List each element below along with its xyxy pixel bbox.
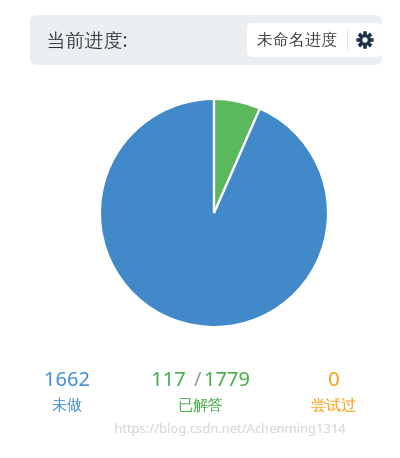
staticText: 未命名进度 bbox=[257, 30, 337, 50]
staticText: https://blog.csdn.net/Achenming1314 bbox=[114, 419, 346, 437]
staticText: 117 bbox=[151, 365, 186, 392]
staticText: 尝试过 bbox=[311, 396, 356, 415]
button[interactable]: 未命名进度 bbox=[247, 23, 347, 57]
staticText: 1662 bbox=[44, 365, 90, 392]
button[interactable]: 117 bbox=[134, 363, 267, 417]
staticText: / bbox=[186, 365, 204, 392]
button[interactable]: 1662 bbox=[0, 363, 134, 417]
staticText: 已解答 bbox=[178, 396, 223, 415]
staticText: 未做 bbox=[52, 396, 82, 415]
button[interactable]: Settings bbox=[348, 23, 382, 57]
staticText: 当前进度: bbox=[46, 27, 128, 53]
button[interactable]: 0 bbox=[267, 363, 400, 417]
staticText: 0 bbox=[328, 365, 340, 392]
staticText: 1779 bbox=[204, 365, 250, 392]
